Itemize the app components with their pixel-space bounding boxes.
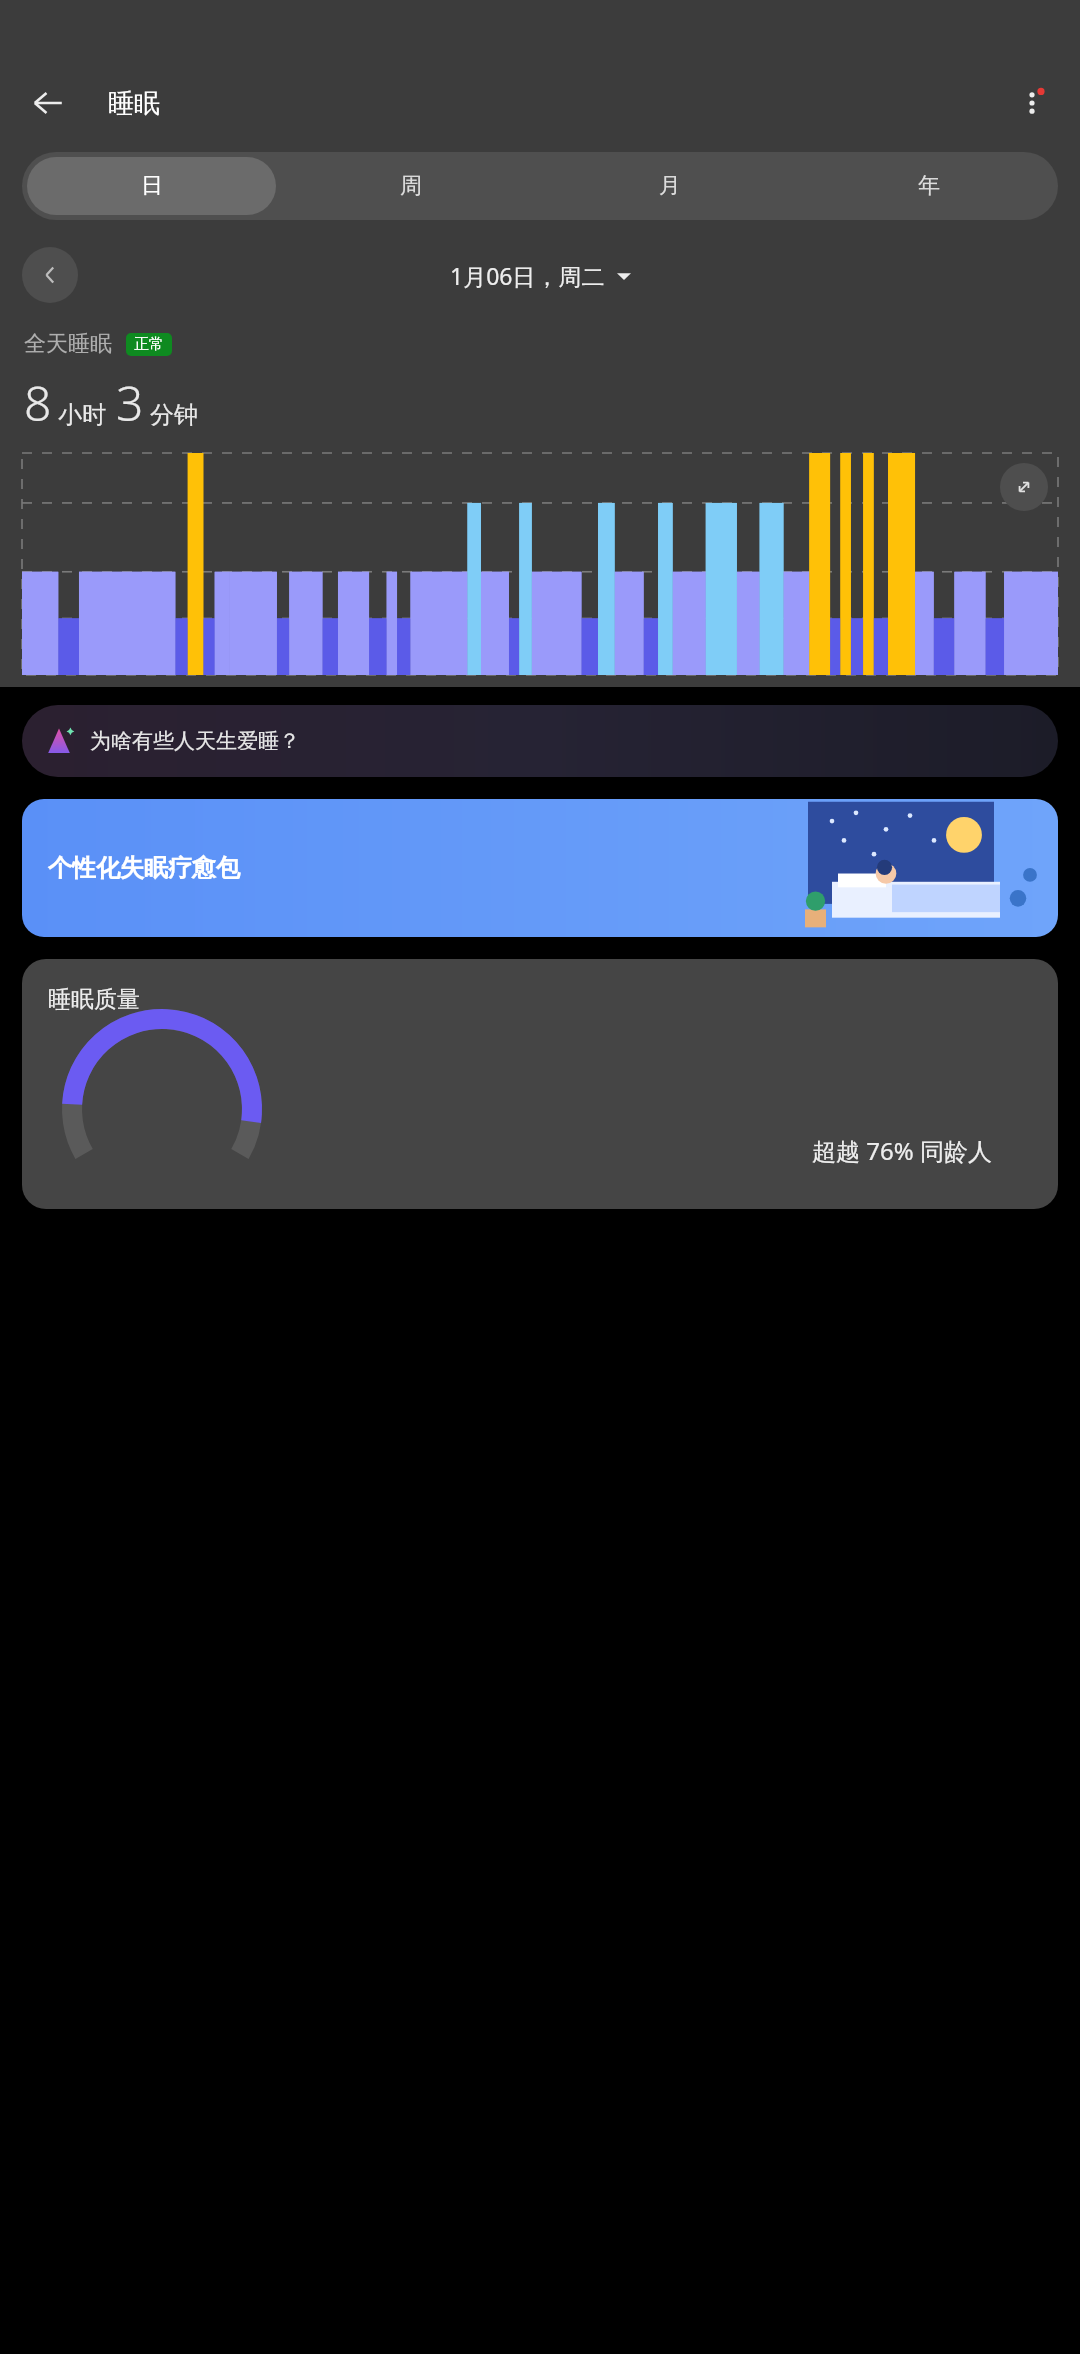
staticText: 睡眠质量 [48,985,140,1014]
staticText: 1月06日，周二 [450,260,605,291]
staticText: 超越 76% 同龄人 [812,1134,992,1167]
staticText: 3 [116,370,144,435]
staticText: 睡眠 [108,87,160,120]
staticText: 分钟 [150,400,198,430]
staticText: 日 [141,172,163,200]
staticText: 小时 [58,400,106,430]
button[interactable]: 1月06日，周二 [450,260,631,291]
button[interactable]: Previous day [22,247,78,303]
button[interactable]: 周 [286,157,535,215]
button[interactable]: Expand chart [1000,463,1048,511]
button[interactable]: 个性化失眠疗愈包 [22,799,1058,937]
button[interactable]: More options [1004,75,1060,131]
button[interactable]: 日 [27,157,276,215]
button[interactable]: Back [20,75,76,131]
button[interactable]: 月 [545,157,794,215]
staticText: 8 [24,370,52,435]
staticText: 全天睡眠 [24,330,112,358]
staticText: 年 [918,172,940,200]
staticText: 正常 [134,335,164,354]
button[interactable]: 睡眠质量 [22,959,1058,1209]
staticText: 周 [400,172,422,200]
staticText: 月 [659,172,681,200]
button[interactable]: 年 [804,157,1053,215]
staticText: 个性化失眠疗愈包 [48,853,240,883]
staticText: 为啥有些人天生爱睡？ [90,728,300,754]
button[interactable]: 为啥有些人天生爱睡？ [22,705,1058,777]
